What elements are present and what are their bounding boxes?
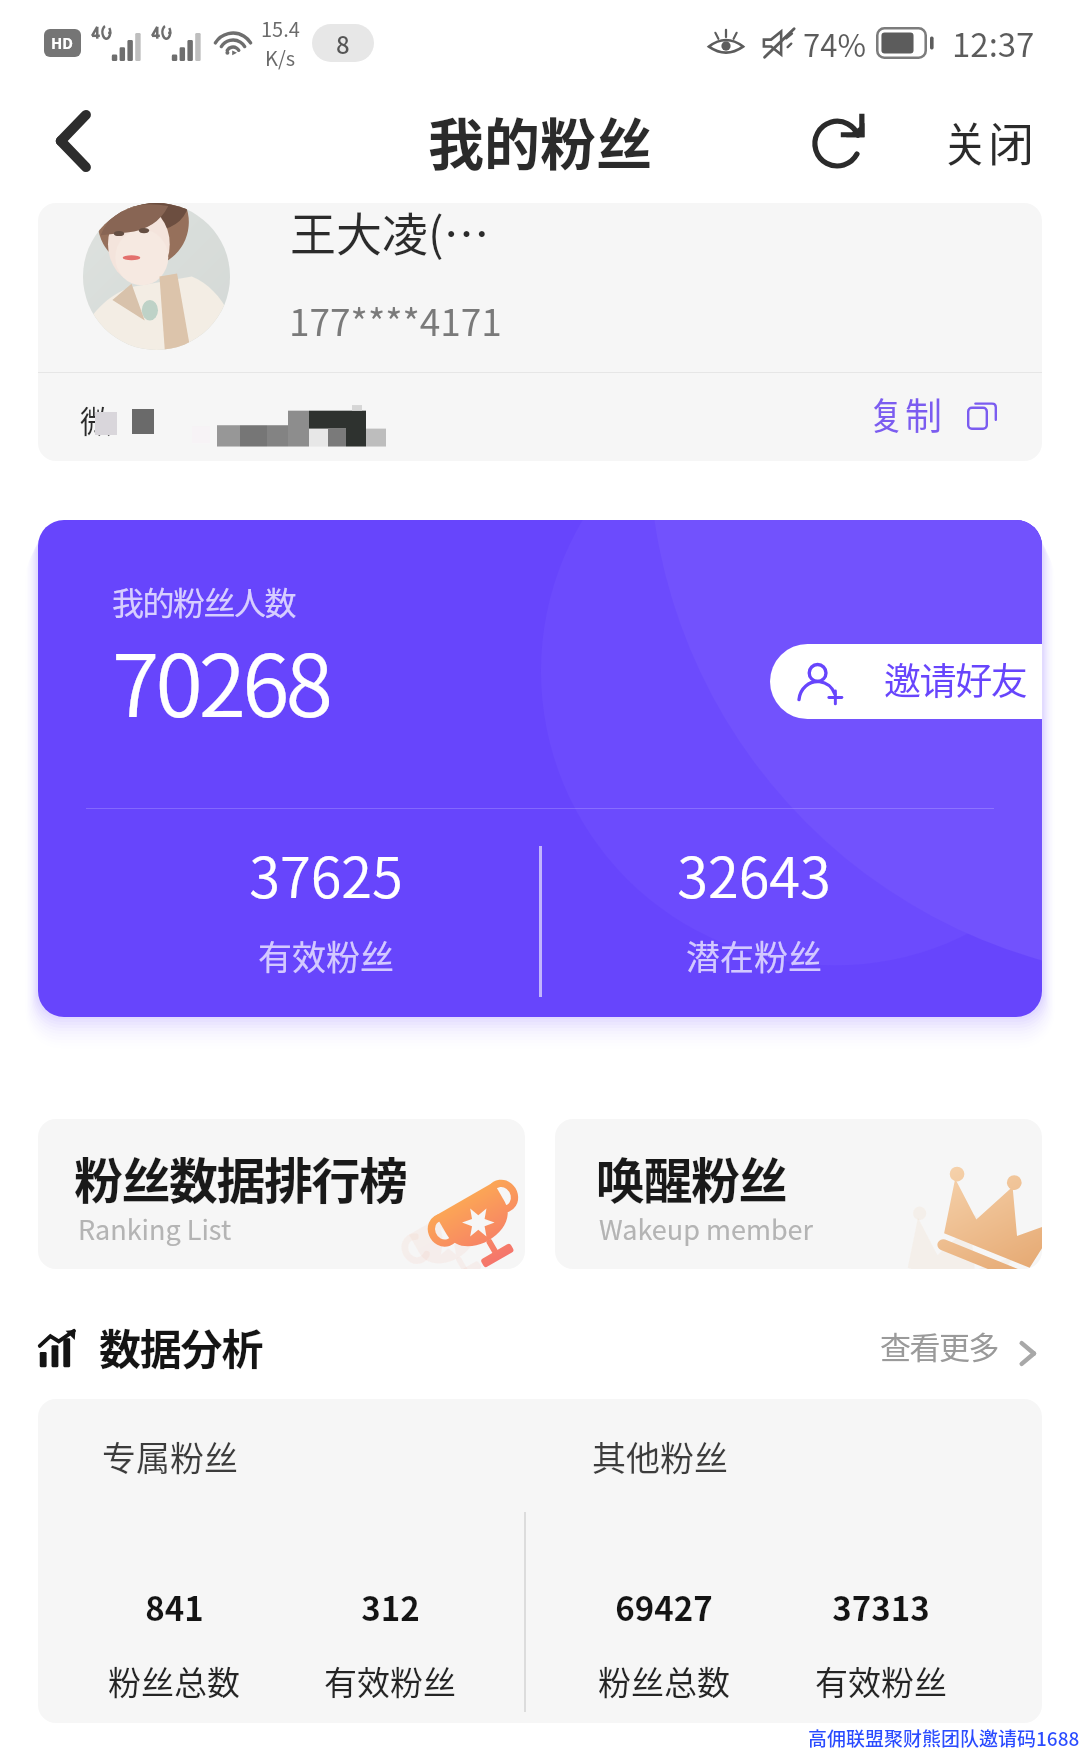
staticText: 关闭: [942, 108, 1034, 175]
staticText: K/s: [265, 43, 296, 72]
button[interactable]: 粉丝数据排行榜: [38, 1119, 525, 1269]
button[interactable]: 邀请好友: [770, 644, 1042, 719]
button[interactable]: 王大凌(…: [38, 203, 1042, 372]
staticText: 我的粉丝人数: [112, 578, 296, 624]
staticText: 177****4171: [289, 293, 502, 347]
staticText: HD: [51, 32, 74, 54]
staticText: 69427: [615, 1583, 713, 1631]
button[interactable]: 查看更多: [860, 1318, 1050, 1382]
staticText: 70268: [112, 617, 330, 742]
staticText: 12:37: [952, 19, 1035, 67]
staticText: 8: [336, 26, 350, 61]
staticText: 查看更多: [880, 1323, 998, 1368]
staticText: 我的粉丝: [428, 100, 652, 181]
staticText: 841: [145, 1583, 204, 1631]
staticText: 邀请好友: [884, 652, 1027, 706]
staticText: 唤醒粉丝: [596, 1142, 787, 1213]
staticText: Ranking List: [78, 1209, 232, 1248]
staticText: Wakeup member: [599, 1209, 814, 1248]
staticText: 数据分析: [99, 1316, 263, 1377]
staticText: 复制: [868, 387, 942, 441]
button[interactable]: Back: [34, 102, 112, 180]
button[interactable]: 微: [38, 373, 1042, 461]
staticText: 15.4: [261, 14, 300, 43]
staticText: 32643: [677, 833, 831, 914]
staticText: 有效粉丝: [815, 1657, 947, 1705]
staticText: 微: [80, 397, 111, 442]
button[interactable]: Refresh: [802, 102, 880, 180]
staticText: 有效粉丝: [324, 1657, 456, 1705]
button[interactable]: 唤醒粉丝: [555, 1119, 1042, 1269]
staticText: 312: [361, 1583, 420, 1631]
staticText: 74%: [803, 21, 866, 66]
staticText: 粉丝总数: [108, 1657, 240, 1705]
staticText: 其他粉丝: [592, 1432, 728, 1481]
staticText: 高佣联盟聚财熊团队邀请码1688: [808, 1724, 1080, 1752]
staticText: 有效粉丝: [258, 931, 394, 980]
staticText: 37313: [832, 1583, 930, 1631]
staticText: 粉丝数据排行榜: [74, 1142, 407, 1213]
staticText: 粉丝总数: [598, 1657, 730, 1705]
staticText: 专属粉丝: [102, 1432, 238, 1481]
staticText: 潜在粉丝: [686, 931, 822, 980]
staticText: 37625: [249, 833, 403, 914]
button[interactable]: 关闭: [934, 98, 1042, 185]
staticText: 王大凌(…: [290, 203, 490, 265]
